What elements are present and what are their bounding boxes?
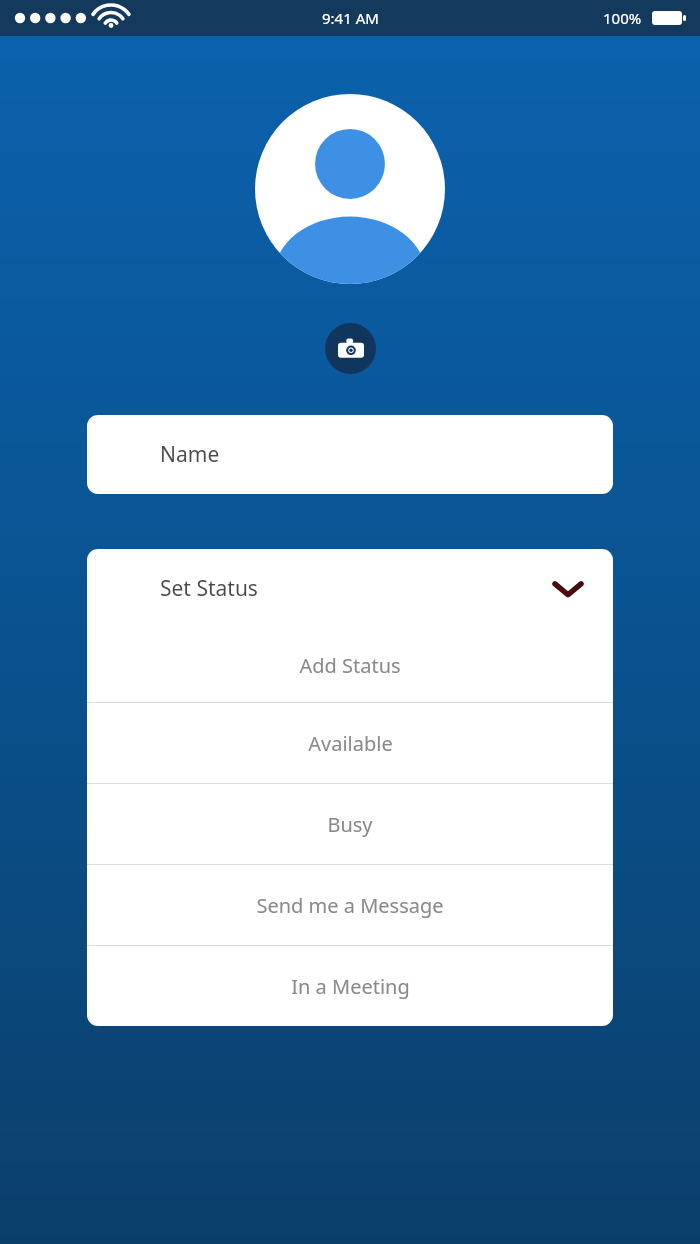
button[interactable]: Change profile photo: [325, 323, 376, 374]
staticText: Busy: [327, 811, 373, 838]
staticText: Add Status: [299, 652, 401, 679]
staticText: Set Status: [160, 574, 258, 603]
staticText: 9:41 AM: [322, 8, 379, 28]
staticText: In a Meeting: [291, 973, 410, 1000]
staticText: Available: [308, 730, 393, 757]
staticText: 100%: [603, 8, 642, 28]
button[interactable]: Set Status: [87, 549, 613, 628]
staticText: Send me a Message: [256, 892, 444, 919]
button[interactable]: In a Meeting: [87, 946, 613, 1026]
button[interactable]: Busy: [87, 784, 613, 864]
button[interactable]: Add Status: [87, 628, 613, 702]
button[interactable]: Send me a Message: [87, 865, 613, 945]
button[interactable]: Name: [87, 415, 613, 494]
button[interactable]: Available: [87, 703, 613, 783]
staticText: Name: [160, 440, 220, 469]
